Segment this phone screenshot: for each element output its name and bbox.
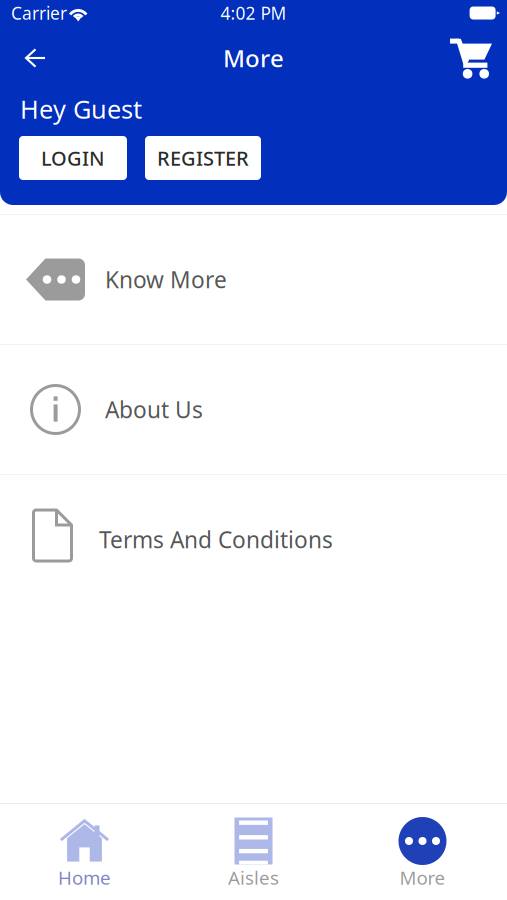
button[interactable]: Know More — [0, 215, 507, 344]
button[interactable]: Home — [0, 804, 169, 900]
button[interactable]: Back — [0, 28, 61, 88]
staticText: Carrier — [11, 1, 67, 24]
button[interactable]: Shopping cart — [443, 28, 507, 88]
staticText: Know More — [105, 264, 227, 294]
button[interactable]: More — [338, 804, 507, 900]
staticText: About Us — [105, 394, 203, 424]
button[interactable]: About Us — [0, 345, 507, 474]
staticText: 4:02 PM — [220, 1, 286, 24]
staticText: More — [399, 865, 445, 890]
staticText: Hey Guest — [20, 92, 142, 126]
staticText: Aisles — [228, 865, 279, 890]
staticText: Terms And Conditions — [99, 524, 333, 554]
button[interactable]: Aisles — [169, 804, 338, 900]
staticText: LOGIN — [41, 145, 105, 171]
button[interactable]: LOGIN — [19, 136, 127, 180]
staticText: Home — [58, 865, 111, 890]
button[interactable]: Terms And Conditions — [0, 475, 507, 604]
button[interactable]: REGISTER — [145, 136, 261, 180]
staticText: REGISTER — [157, 145, 249, 171]
staticText: More — [223, 42, 284, 74]
